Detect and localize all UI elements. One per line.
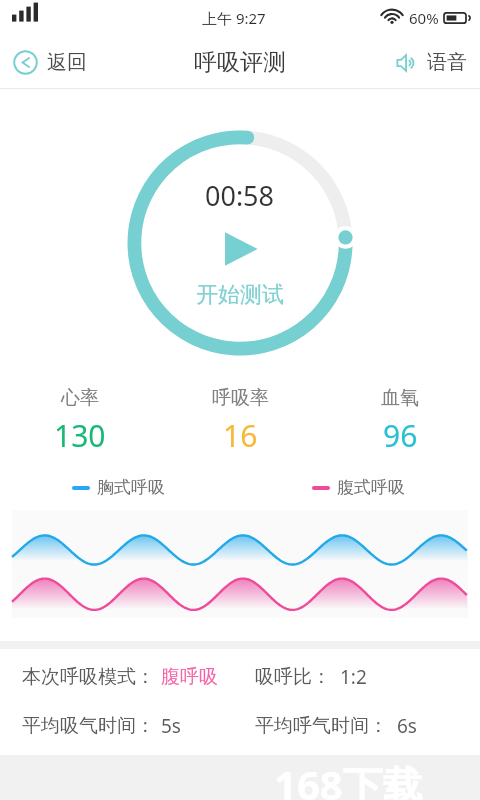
staticText: 呼吸评测 [194, 48, 286, 77]
staticText: 00:58 [205, 177, 275, 214]
button[interactable]: 胸式呼吸 [72, 477, 165, 498]
staticText: 6s [397, 713, 417, 739]
staticText: 130 [54, 415, 106, 456]
staticText: 腹式呼吸 [337, 477, 405, 498]
staticText: 上午 9:27 [202, 8, 266, 28]
staticText: 平均呼气时间： [255, 714, 388, 738]
button[interactable]: 腹式呼吸 [312, 477, 405, 498]
button[interactable]: 00:58 [126, 129, 354, 357]
staticText: 血氧 [381, 386, 419, 410]
staticText: 1:2 [340, 664, 367, 690]
button[interactable]: 血氧 [320, 386, 480, 456]
staticText: 腹呼吸 [161, 665, 218, 689]
button[interactable]: 语音 Voice [390, 45, 472, 80]
staticText: 开始测试 [196, 281, 284, 309]
staticText: 吸呼比： [255, 665, 331, 689]
staticText: 5s [161, 713, 181, 739]
staticText: 心率 [61, 386, 99, 410]
staticText: 本次呼吸模式： [22, 665, 155, 689]
staticText: 60% [409, 8, 439, 28]
staticText: 168下载 [274, 757, 423, 800]
staticText: 16 [223, 415, 258, 456]
button[interactable]: 心率 [0, 386, 160, 456]
staticText: 平均吸气时间： [22, 714, 155, 738]
staticText: 语音 [427, 50, 467, 75]
button[interactable]: 返回 [8, 45, 92, 80]
staticText: 96 [383, 415, 418, 456]
staticText: 返回 [47, 50, 87, 75]
staticText: 胸式呼吸 [97, 477, 165, 498]
button[interactable]: 呼吸率 [160, 386, 320, 456]
staticText: 呼吸率 [212, 386, 269, 410]
